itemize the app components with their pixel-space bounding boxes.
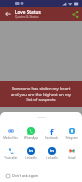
button[interactable]: Gmail [62, 147, 81, 160]
staticText: Don't ask again [12, 173, 39, 178]
staticText: Truecaller [4, 156, 18, 160]
button[interactable]: WhatsApp [21, 127, 40, 140]
button[interactable]: Truecaller [1, 147, 20, 160]
staticText: Love Status [15, 9, 41, 15]
staticText: Gmail [68, 156, 76, 160]
button[interactable]: f [42, 127, 61, 140]
staticText: in [50, 148, 54, 154]
staticText: Media files [3, 136, 18, 140]
staticText: Someone has stolen my heart and you are … [11, 86, 71, 102]
button[interactable]: Don't ask again [4, 171, 41, 180]
button[interactable]: in [42, 147, 61, 160]
staticText: Quotes & Status [15, 15, 39, 19]
button[interactable]: Media files [1, 127, 20, 140]
staticText: Telegram [65, 136, 78, 140]
staticText: WhatsApp [24, 136, 38, 140]
staticText: LinkedIn [46, 156, 58, 160]
button[interactable]: Telegram [62, 127, 81, 140]
button[interactable]: Share [69, 7, 82, 21]
staticText: f [50, 127, 54, 135]
button[interactable]: in [21, 147, 40, 160]
staticText: LinkedIn [25, 156, 37, 160]
button[interactable]: Navigate back [0, 7, 15, 21]
staticText: in [29, 148, 33, 154]
staticText: Facebook [45, 136, 58, 140]
